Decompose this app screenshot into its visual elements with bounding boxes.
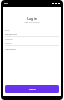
staticText: •••••••• [5,42,12,45]
staticText: user@mail.co [5,33,17,36]
button[interactable]: Password [5,38,59,45]
staticText: 9:41 [4,2,9,5]
button[interactable]: Email [5,29,59,36]
button[interactable]: Forgot password? [5,49,16,51]
staticText: Log in [29,88,36,91]
staticText: Email [5,29,10,31]
staticText: Sign in to continue [3,21,61,23]
button[interactable]: Log in [5,85,59,93]
staticText: Log in [3,17,61,21]
staticText: Forgot password? [5,49,16,51]
staticText: Password [5,38,13,40]
